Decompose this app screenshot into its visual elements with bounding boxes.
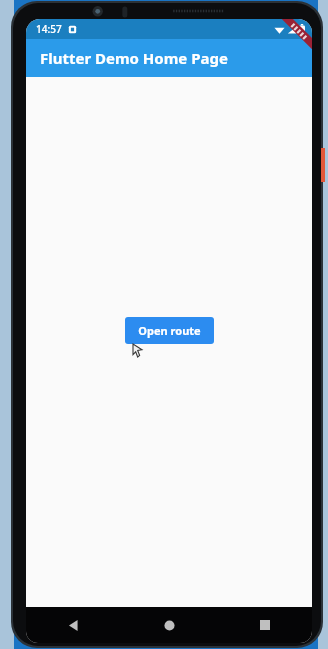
button[interactable]: Open route <box>125 317 214 344</box>
staticText: Flutter Demo Home Page <box>40 48 228 68</box>
button[interactable]: Back <box>26 607 122 643</box>
staticText: 14:57 <box>36 22 62 36</box>
button[interactable]: Home <box>122 607 217 643</box>
button[interactable]: Recent apps <box>217 607 312 643</box>
staticText: Open route <box>138 323 201 338</box>
